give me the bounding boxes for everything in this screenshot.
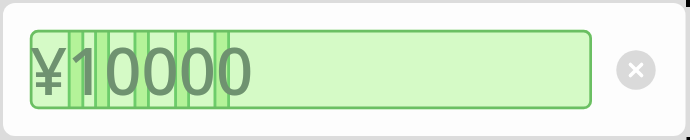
button[interactable]: Amount input field bbox=[29, 29, 591, 108]
button[interactable]: Clear text bbox=[616, 50, 655, 89]
staticText: ¥10000 bbox=[30, 26, 254, 115]
